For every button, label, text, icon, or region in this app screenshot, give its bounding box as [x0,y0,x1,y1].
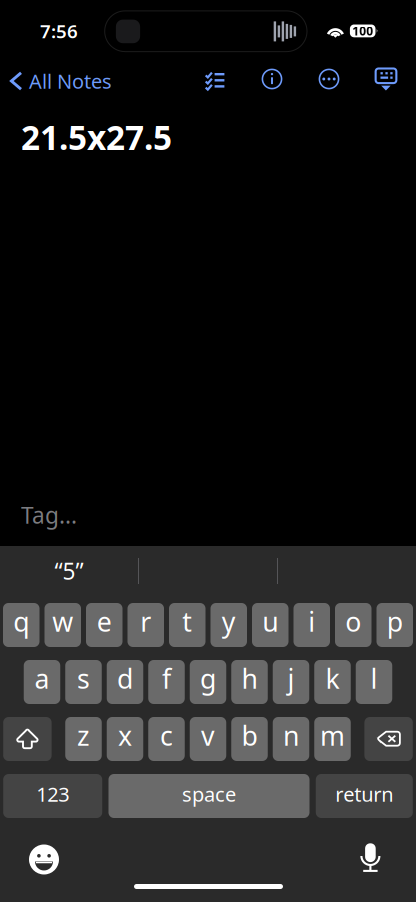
button[interactable]: Dictate [360,843,381,873]
staticText: z [77,718,90,753]
button[interactable]: z [65,717,102,761]
button[interactable]: t [169,603,205,647]
button[interactable]: r [127,603,164,647]
staticText: b [241,718,257,753]
staticText: u [262,604,278,639]
staticText: 100 [352,23,373,39]
staticText: 123 [36,781,69,807]
staticText: c [160,718,173,753]
button[interactable]: k [314,660,351,704]
button[interactable]: d [107,660,143,704]
button[interactable]: return [316,774,413,818]
button[interactable]: m [314,717,351,761]
button[interactable]: Note information [250,57,294,101]
staticText: d [117,661,133,696]
button[interactable]: All Notes [2,59,152,103]
staticText: x [118,718,132,753]
staticText: j [287,661,294,696]
staticText: 21.5x27.5 [21,115,172,159]
button[interactable]: y [210,603,247,647]
button[interactable]: v [190,717,226,761]
staticText: 7:56 [40,19,78,43]
button[interactable]: a [24,660,60,704]
button[interactable]: l [356,660,392,704]
staticText: a [34,661,49,696]
staticText: t [182,604,192,639]
staticText: All Notes [29,68,112,94]
button[interactable]: Shift [3,717,52,761]
button[interactable]: g [190,660,226,704]
button[interactable]: c [148,717,185,761]
button[interactable]: 123 [3,774,102,818]
button[interactable]: s [65,660,102,704]
staticText: n [283,718,299,753]
staticText: k [325,661,339,696]
staticText: q [13,604,29,639]
button[interactable]: n [273,717,309,761]
button[interactable]: j [273,660,309,704]
button[interactable]: Hide keyboard [364,58,408,102]
button[interactable]: u [252,603,288,647]
staticText: w [52,604,73,639]
button[interactable]: “5” [0,556,138,586]
button[interactable]: p [376,603,413,647]
button[interactable]: x [107,717,143,761]
staticText: Tag... [21,500,77,530]
staticText: return [335,781,393,807]
staticText: “5” [54,556,83,586]
staticText: p [387,604,403,639]
button[interactable]: o [335,603,371,647]
button[interactable]: w [44,603,81,647]
button[interactable]: space [108,774,309,818]
staticText: m [320,718,345,753]
button[interactable]: Emoji [29,844,59,874]
button[interactable]: More options [307,57,351,101]
staticText: f [162,661,171,696]
button[interactable]: i [293,603,330,647]
staticText: i [308,604,315,639]
staticText: v [201,718,215,753]
staticText: r [140,604,151,639]
staticText: y [222,604,236,639]
button[interactable]: q [3,603,39,647]
staticText: l [370,661,377,696]
button[interactable]: f [148,660,185,704]
staticText: space [182,781,236,807]
button[interactable]: Delete [364,717,413,761]
button[interactable]: Checklist [193,58,237,102]
staticText: o [345,604,361,639]
staticText: e [97,604,112,639]
button[interactable]: e [86,603,122,647]
staticText: g [200,661,216,696]
staticText: h [241,661,257,696]
button[interactable]: h [231,660,268,704]
button[interactable]: b [231,717,268,761]
staticText: s [77,661,90,696]
